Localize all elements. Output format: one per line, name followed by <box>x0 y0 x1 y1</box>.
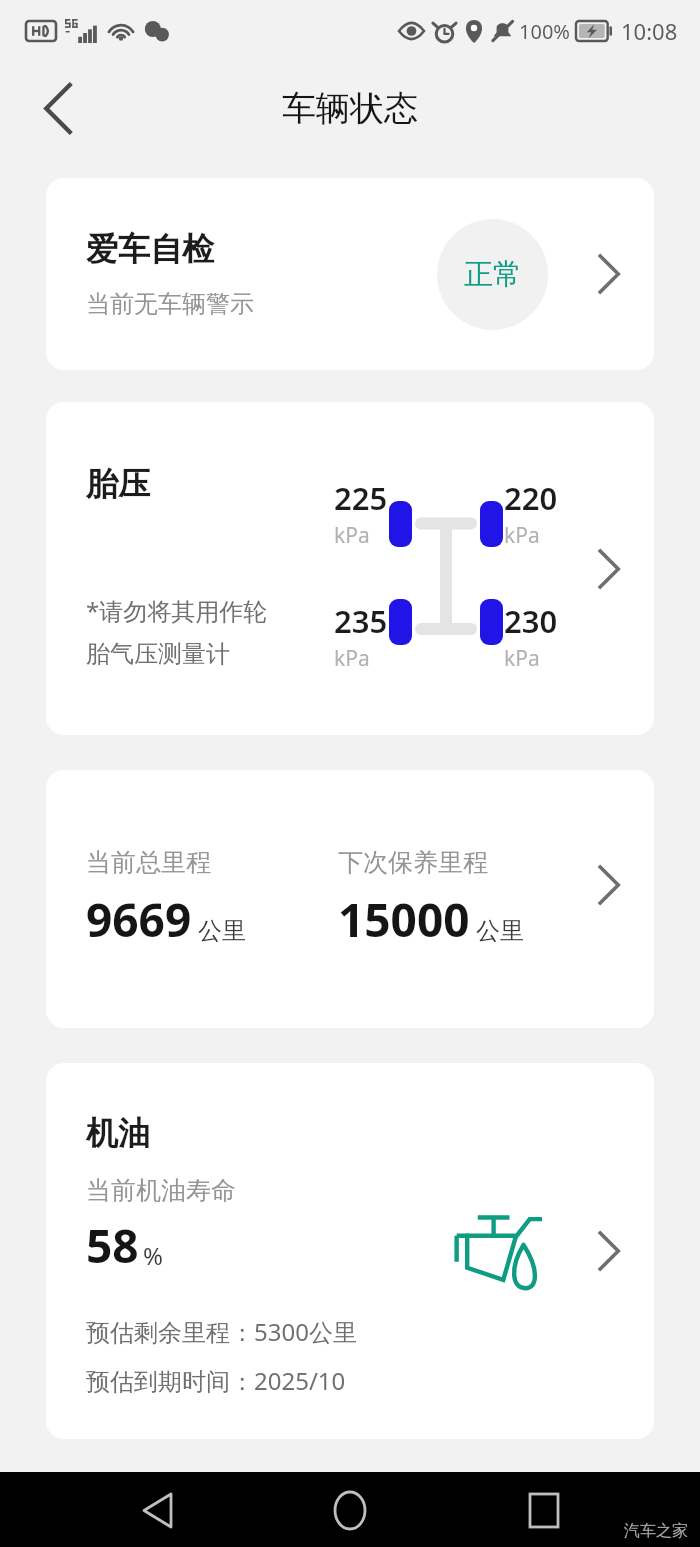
staticText: 220 <box>504 477 558 519</box>
staticText: 235 <box>334 600 388 642</box>
staticText: 公里 <box>198 916 246 946</box>
staticText: 当前无车辆警示 <box>86 289 254 319</box>
button[interactable]: Back <box>120 1473 194 1547</box>
button[interactable]: 爱车自检 <box>46 178 654 370</box>
staticText: 预估剩余里程：5300公里 <box>86 1315 357 1348</box>
button[interactable]: 机油 <box>46 1063 654 1439</box>
staticText: 机油 <box>86 1113 150 1153</box>
staticText: 58 <box>86 1214 139 1277</box>
button[interactable]: Back <box>22 72 94 144</box>
staticText: 公里 <box>476 916 524 946</box>
staticText: 9669 <box>86 888 192 951</box>
staticText: kPa <box>504 521 540 550</box>
staticText: 下次保养里程 <box>338 847 488 878</box>
staticText: kPa <box>504 644 540 673</box>
button[interactable]: 当前总里程 <box>46 770 654 1028</box>
staticText: 汽车之家 <box>624 1521 688 1541</box>
staticText: kPa <box>334 521 370 550</box>
staticText: 爱车自检 <box>86 229 214 269</box>
button[interactable]: Home <box>313 1473 387 1547</box>
staticText: 15000 <box>338 888 470 951</box>
button[interactable]: 胎压 <box>46 402 654 735</box>
staticText: 胎压 <box>86 464 150 504</box>
staticText: 正常 <box>464 256 522 293</box>
staticText: *请勿将其用作轮 <box>86 594 268 627</box>
staticText: kPa <box>334 644 370 673</box>
staticText: 预估到期时间：2025/10 <box>86 1364 346 1397</box>
staticText: % <box>143 1239 163 1272</box>
staticText: 车辆状态 <box>282 87 418 130</box>
staticText: 10:08 <box>621 16 678 46</box>
staticText: 100% <box>519 18 570 45</box>
staticText: 225 <box>334 477 388 519</box>
button[interactable]: Recents <box>507 1473 581 1547</box>
staticText: 当前总里程 <box>86 847 211 878</box>
staticText: 230 <box>504 600 558 642</box>
staticText: 当前机油寿命 <box>86 1175 236 1206</box>
staticText: 胎气压测量计 <box>86 639 230 669</box>
